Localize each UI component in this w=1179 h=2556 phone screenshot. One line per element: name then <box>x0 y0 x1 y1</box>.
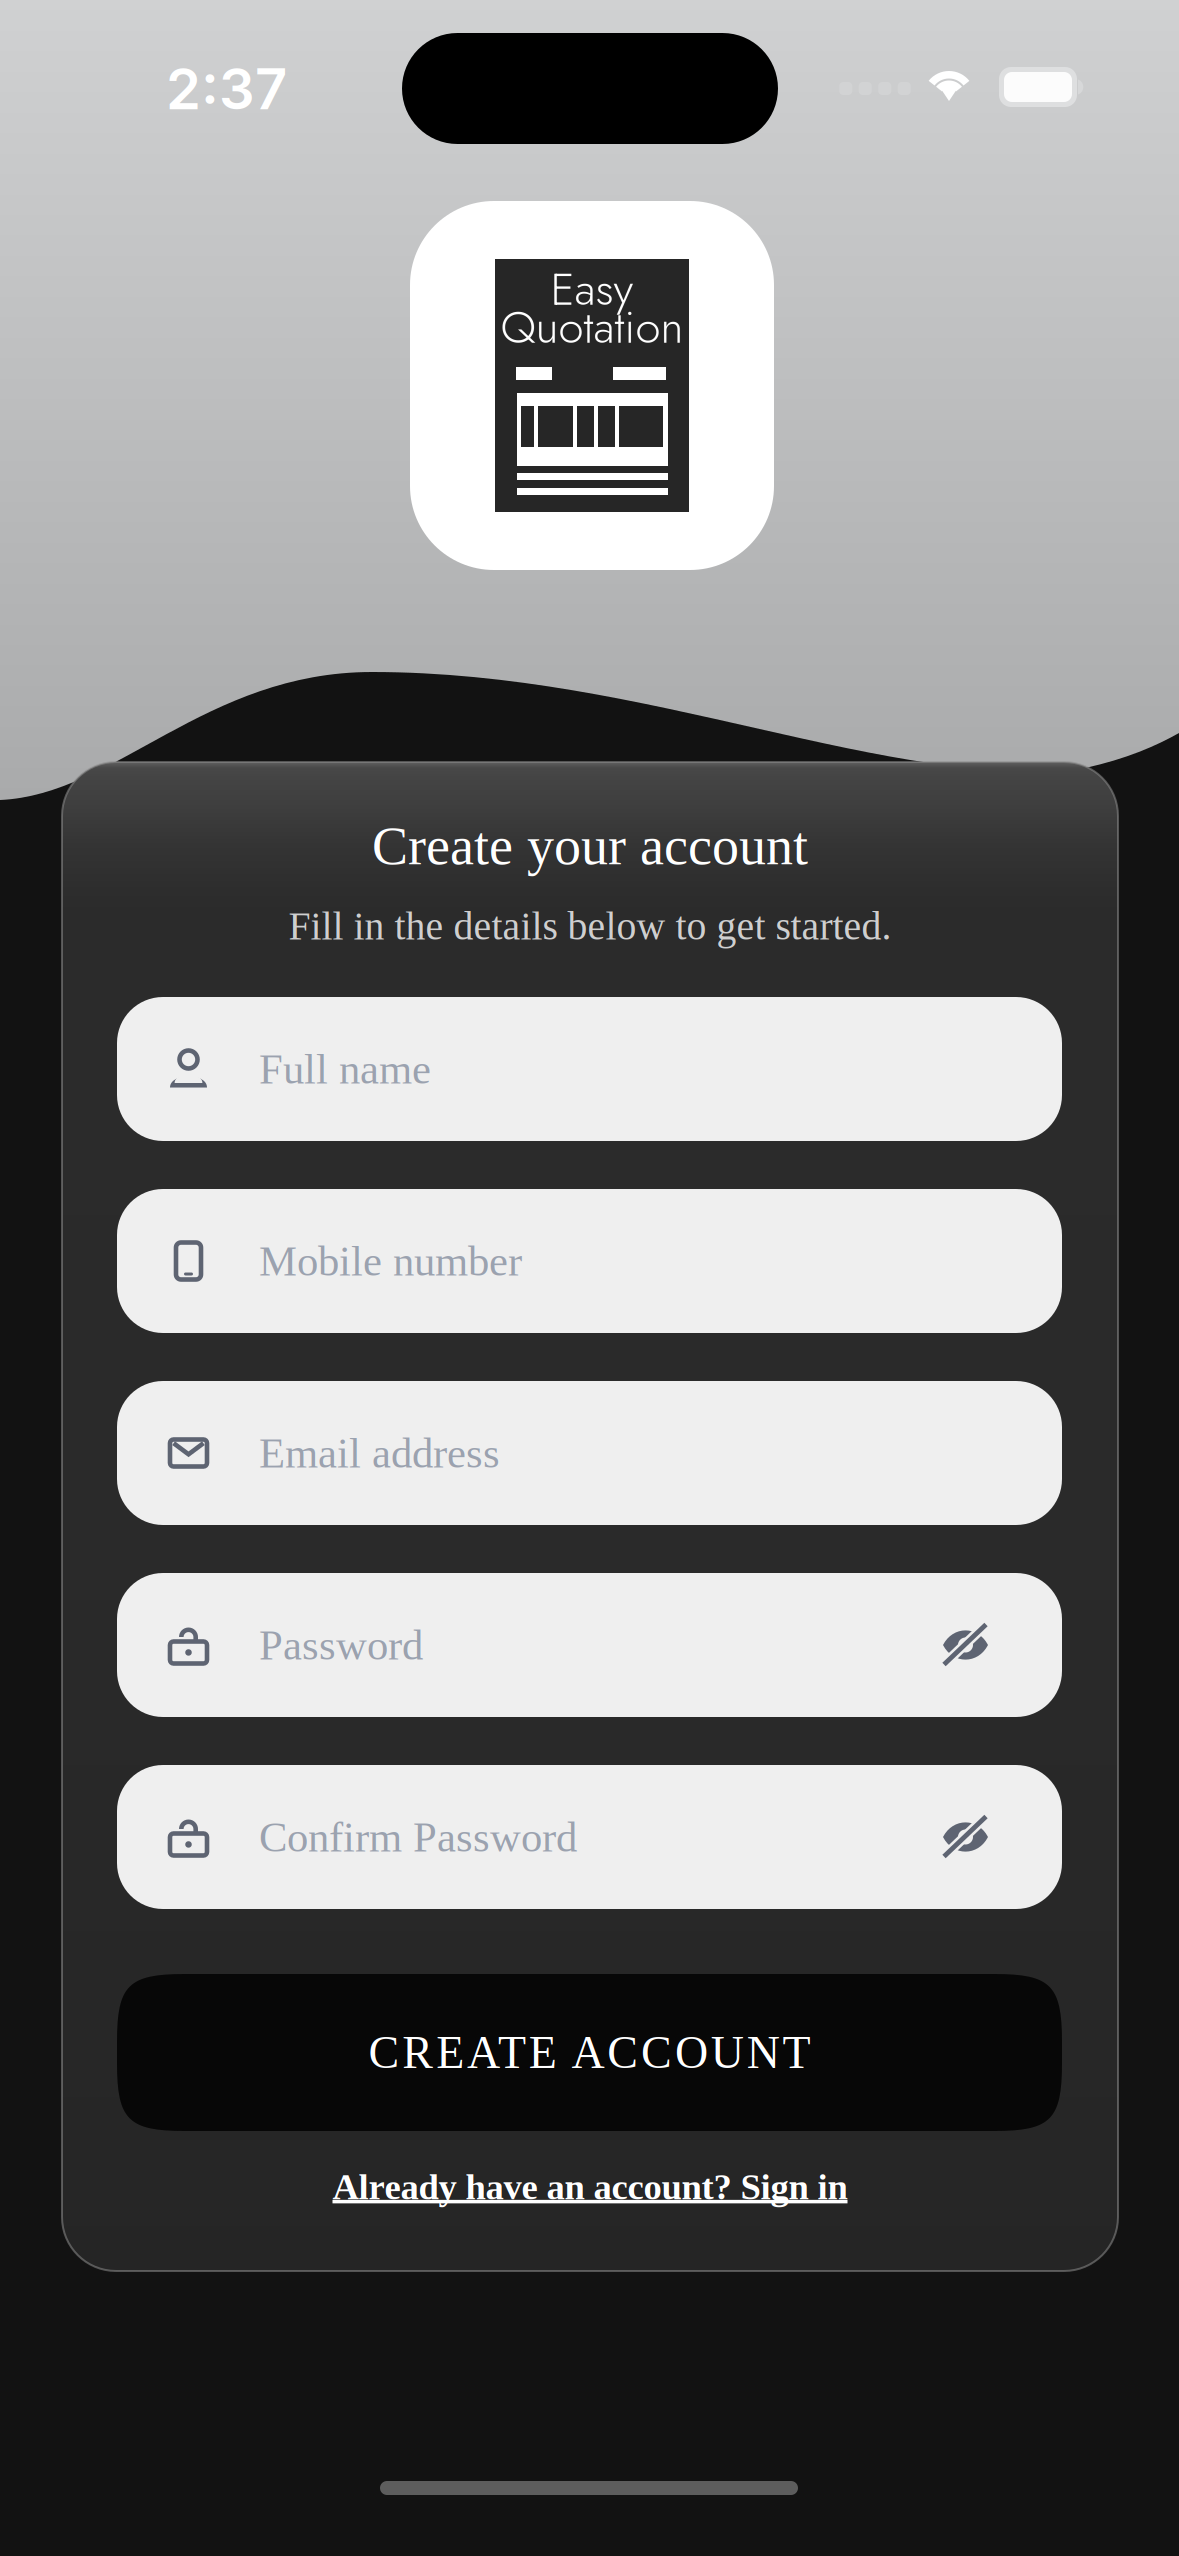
staticText: CREATE ACCOUNT <box>368 2027 810 2078</box>
button[interactable]: Full name <box>117 997 1062 1141</box>
button[interactable]: Mobile number <box>117 1189 1062 1333</box>
staticText: Already have an account? Sign in <box>332 2167 847 2207</box>
staticText: Confirm Password <box>259 1813 577 1861</box>
staticText: 2:37 <box>166 55 287 123</box>
staticText: Mobile number <box>259 1237 522 1285</box>
staticText: Email address <box>259 1429 500 1477</box>
staticText: Fill in the details below to get started… <box>288 904 891 948</box>
button[interactable]: Already have an account? Sign in <box>62 2155 1118 2219</box>
button[interactable]: Email address <box>117 1381 1062 1525</box>
staticText: Password <box>259 1621 423 1669</box>
button[interactable]: Confirm Password <box>117 1765 1062 1909</box>
staticText: Quotation <box>500 294 683 360</box>
staticText: Easy <box>550 256 633 322</box>
staticText: Full name <box>259 1045 431 1093</box>
button[interactable]: Password <box>117 1573 1062 1717</box>
button[interactable]: CREATE ACCOUNT <box>117 1974 1062 2131</box>
staticText: Create your account <box>372 816 808 876</box>
